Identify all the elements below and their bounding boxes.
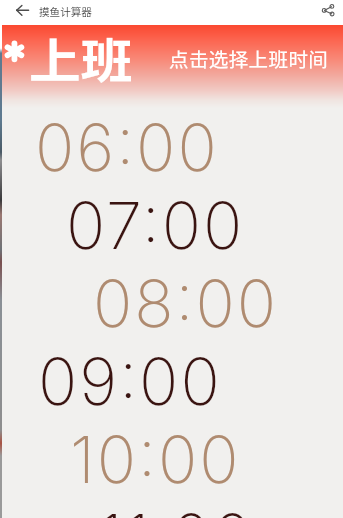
staticText: 摸鱼计算器: [39, 4, 92, 19]
button[interactable]: 11:00: [98, 498, 254, 518]
button[interactable]: 07:00: [66, 186, 245, 265]
button[interactable]: Share: [316, 0, 340, 21]
staticText: 11:00: [98, 498, 254, 518]
staticText: 07:00: [66, 186, 245, 265]
staticText: 06:00: [35, 108, 219, 187]
staticText: 09:00: [38, 342, 222, 421]
button[interactable]: 06:00: [35, 108, 219, 187]
button[interactable]: 08:00: [93, 264, 279, 343]
button[interactable]: 09:00: [38, 342, 222, 421]
button[interactable]: Back: [10, 0, 35, 25]
button[interactable]: 10:00: [70, 420, 241, 499]
staticText: 点击选择上班时间: [169, 44, 329, 72]
staticText: 08:00: [93, 264, 279, 343]
staticText: 10:00: [70, 420, 241, 499]
button[interactable]: 点击选择上班时间: [169, 44, 329, 72]
staticText: 上班: [29, 23, 132, 91]
